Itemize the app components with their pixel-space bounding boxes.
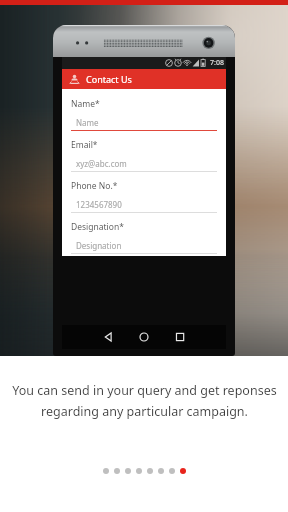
staticText: 7:08 — [210, 58, 224, 68]
button[interactable]: Contacts — [62, 69, 226, 89]
staticText: Designation* — [71, 221, 124, 233]
button[interactable]: Name* — [71, 98, 217, 139]
button[interactable] — [169, 468, 175, 474]
button[interactable] — [136, 468, 142, 474]
staticText: regarding any particular campaign. — [41, 403, 248, 420]
staticText: Name* — [71, 98, 100, 110]
button[interactable]: Email* — [71, 139, 217, 180]
button[interactable] — [180, 468, 186, 474]
staticText: Phone No.* — [71, 180, 118, 192]
button[interactable]: Designation* — [71, 221, 217, 256]
staticText: Designation — [76, 240, 122, 251]
other: Contacts — [68, 73, 81, 86]
staticText: You can send in your query and get repon… — [12, 382, 277, 399]
button[interactable] — [158, 468, 164, 474]
staticText: xyz@abc.com — [76, 158, 127, 169]
button[interactable] — [103, 468, 109, 474]
button[interactable] — [114, 468, 120, 474]
staticText: Contact Us — [86, 73, 132, 85]
staticText: Email* — [71, 139, 98, 151]
staticText: 1234567890 — [76, 199, 122, 210]
button[interactable] — [147, 468, 153, 474]
button[interactable] — [125, 468, 131, 474]
button[interactable]: Phone No.* — [71, 180, 217, 221]
staticText: Name — [76, 117, 99, 128]
